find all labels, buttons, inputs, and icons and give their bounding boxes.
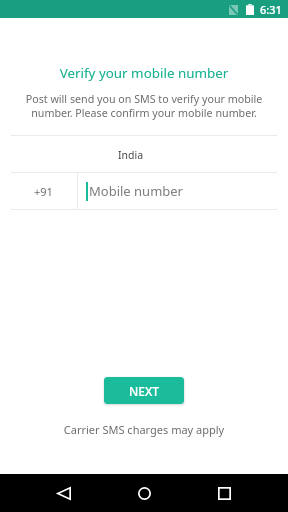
button[interactable]: NEXT (104, 377, 184, 404)
staticText: +91 (34, 184, 53, 199)
staticText: Carrier SMS charges may apply (0, 422, 288, 437)
staticText: Post will send you on SMS to verify your… (22, 92, 266, 120)
staticText: NEXT (129, 383, 160, 399)
staticText: Mobile number (89, 182, 183, 200)
button[interactable]: +91 (0, 173, 288, 209)
staticText: Verify your mobile number (0, 64, 288, 82)
button[interactable]: Back (24, 474, 104, 512)
button[interactable]: Home (104, 474, 184, 512)
button[interactable]: Recents (184, 474, 264, 512)
staticText: India (118, 148, 144, 162)
button[interactable]: India (0, 137, 288, 173)
staticText: 6:31 (260, 2, 282, 17)
